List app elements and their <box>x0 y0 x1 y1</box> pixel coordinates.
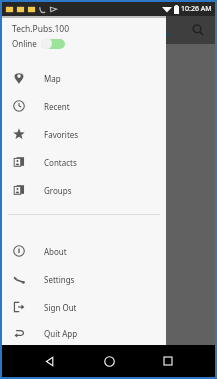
staticText: Contacts <box>44 157 77 168</box>
staticText: Recent <box>44 101 70 112</box>
button[interactable]: Settings <box>2 265 166 293</box>
button[interactable]: Groups <box>2 176 166 204</box>
button[interactable]: Recent <box>2 92 166 120</box>
button[interactable]: Call <box>155 21 173 39</box>
button[interactable]: About <box>2 237 166 265</box>
button[interactable]: Recents <box>155 348 181 374</box>
staticText: About <box>44 246 67 257</box>
button[interactable]: Online toggle <box>41 38 65 49</box>
staticText: Tech.Pubs.100 <box>12 23 70 35</box>
staticText: Groups <box>44 185 72 196</box>
staticText: Online <box>12 38 37 49</box>
button[interactable]: Favorites <box>2 120 166 148</box>
staticText: Sign Out <box>44 302 77 313</box>
staticText: 10:26 AM <box>181 4 212 14</box>
staticText: Favorites <box>44 129 79 140</box>
button[interactable]: Quit App <box>2 321 166 345</box>
staticText: Quit App <box>44 328 78 339</box>
staticText: Settings <box>44 274 75 285</box>
button[interactable]: Contacts <box>2 148 166 176</box>
button[interactable]: Home <box>96 348 122 374</box>
staticText: Map <box>44 73 61 84</box>
button[interactable]: Search <box>189 21 207 39</box>
button[interactable]: Back <box>36 348 62 374</box>
button[interactable]: Sign Out <box>2 293 166 321</box>
button[interactable]: Tech.Pubs.100 <box>2 18 166 58</box>
button[interactable]: Map <box>2 64 166 92</box>
